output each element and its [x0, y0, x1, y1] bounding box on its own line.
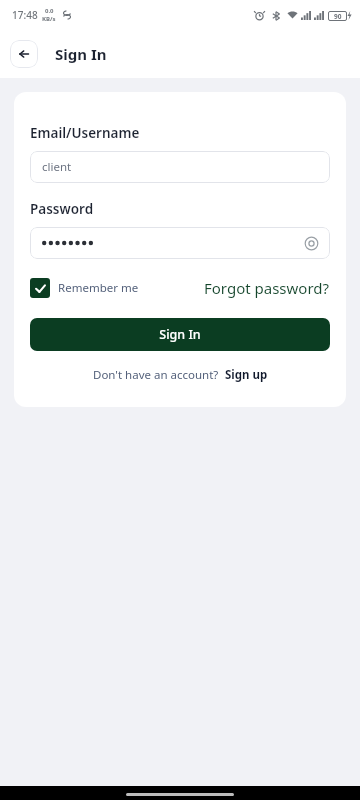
staticText: client: [42, 159, 72, 175]
staticText: Sign In: [55, 44, 107, 64]
staticText: Remember me: [58, 280, 139, 296]
button[interactable]: Show password: [301, 233, 321, 253]
button[interactable]: Sign In: [30, 318, 330, 351]
button[interactable]: Forgot password?: [204, 276, 330, 300]
button[interactable]: Show password: [30, 227, 330, 259]
staticText: 0.0: [45, 7, 54, 15]
button[interactable]: Back: [10, 40, 38, 68]
button[interactable]: Sign up: [225, 365, 268, 385]
button[interactable]: client: [30, 151, 330, 183]
staticText: Password: [30, 200, 94, 218]
staticText: 90: [334, 12, 342, 21]
staticText: Sign In: [159, 326, 201, 343]
button[interactable]: Remember me: [30, 276, 139, 300]
staticText: 17:48: [12, 8, 38, 22]
staticText: Email/Username: [30, 124, 140, 142]
staticText: KB/s: [42, 15, 56, 23]
staticText: Don't have an account?: [93, 367, 219, 383]
